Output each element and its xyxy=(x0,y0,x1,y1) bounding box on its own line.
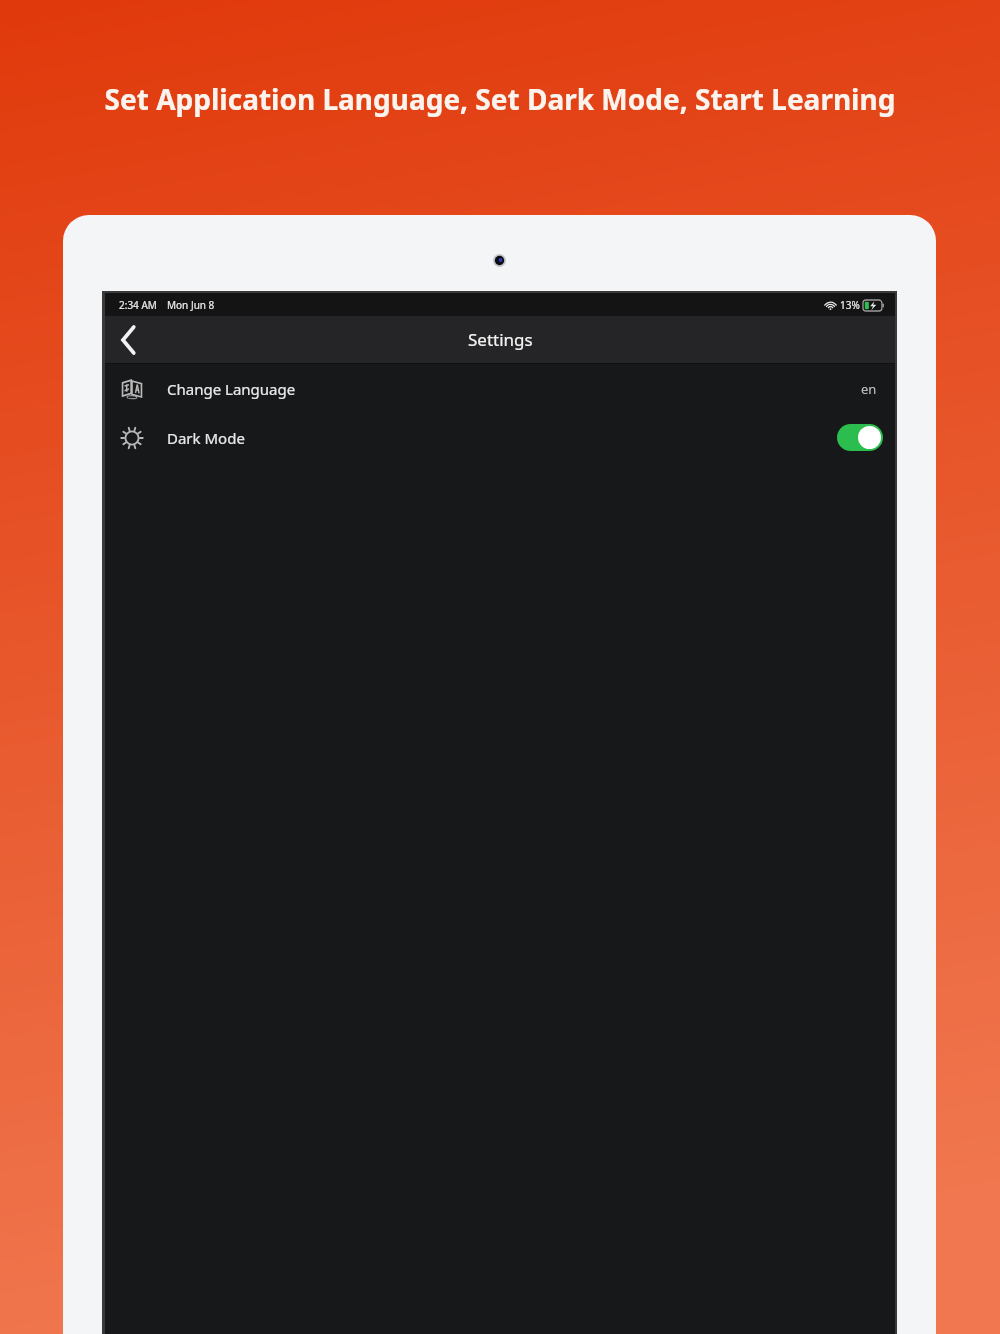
button[interactable]: Back xyxy=(105,316,153,363)
button[interactable]: Dark Mode toggle, on xyxy=(837,424,883,451)
staticText: 13% xyxy=(840,298,860,312)
staticText: Change Language xyxy=(167,379,861,399)
button[interactable]: Dark Mode xyxy=(105,413,895,462)
staticText: Dark Mode xyxy=(167,428,837,448)
staticText: Mon Jun 8 xyxy=(167,298,215,312)
staticText: en xyxy=(861,380,877,398)
staticText: Set Application Language, Set Dark Mode,… xyxy=(0,80,1000,118)
staticText: Settings xyxy=(468,328,533,351)
button[interactable]: Change Language xyxy=(105,364,895,413)
staticText: 2:34 AM xyxy=(119,298,157,312)
